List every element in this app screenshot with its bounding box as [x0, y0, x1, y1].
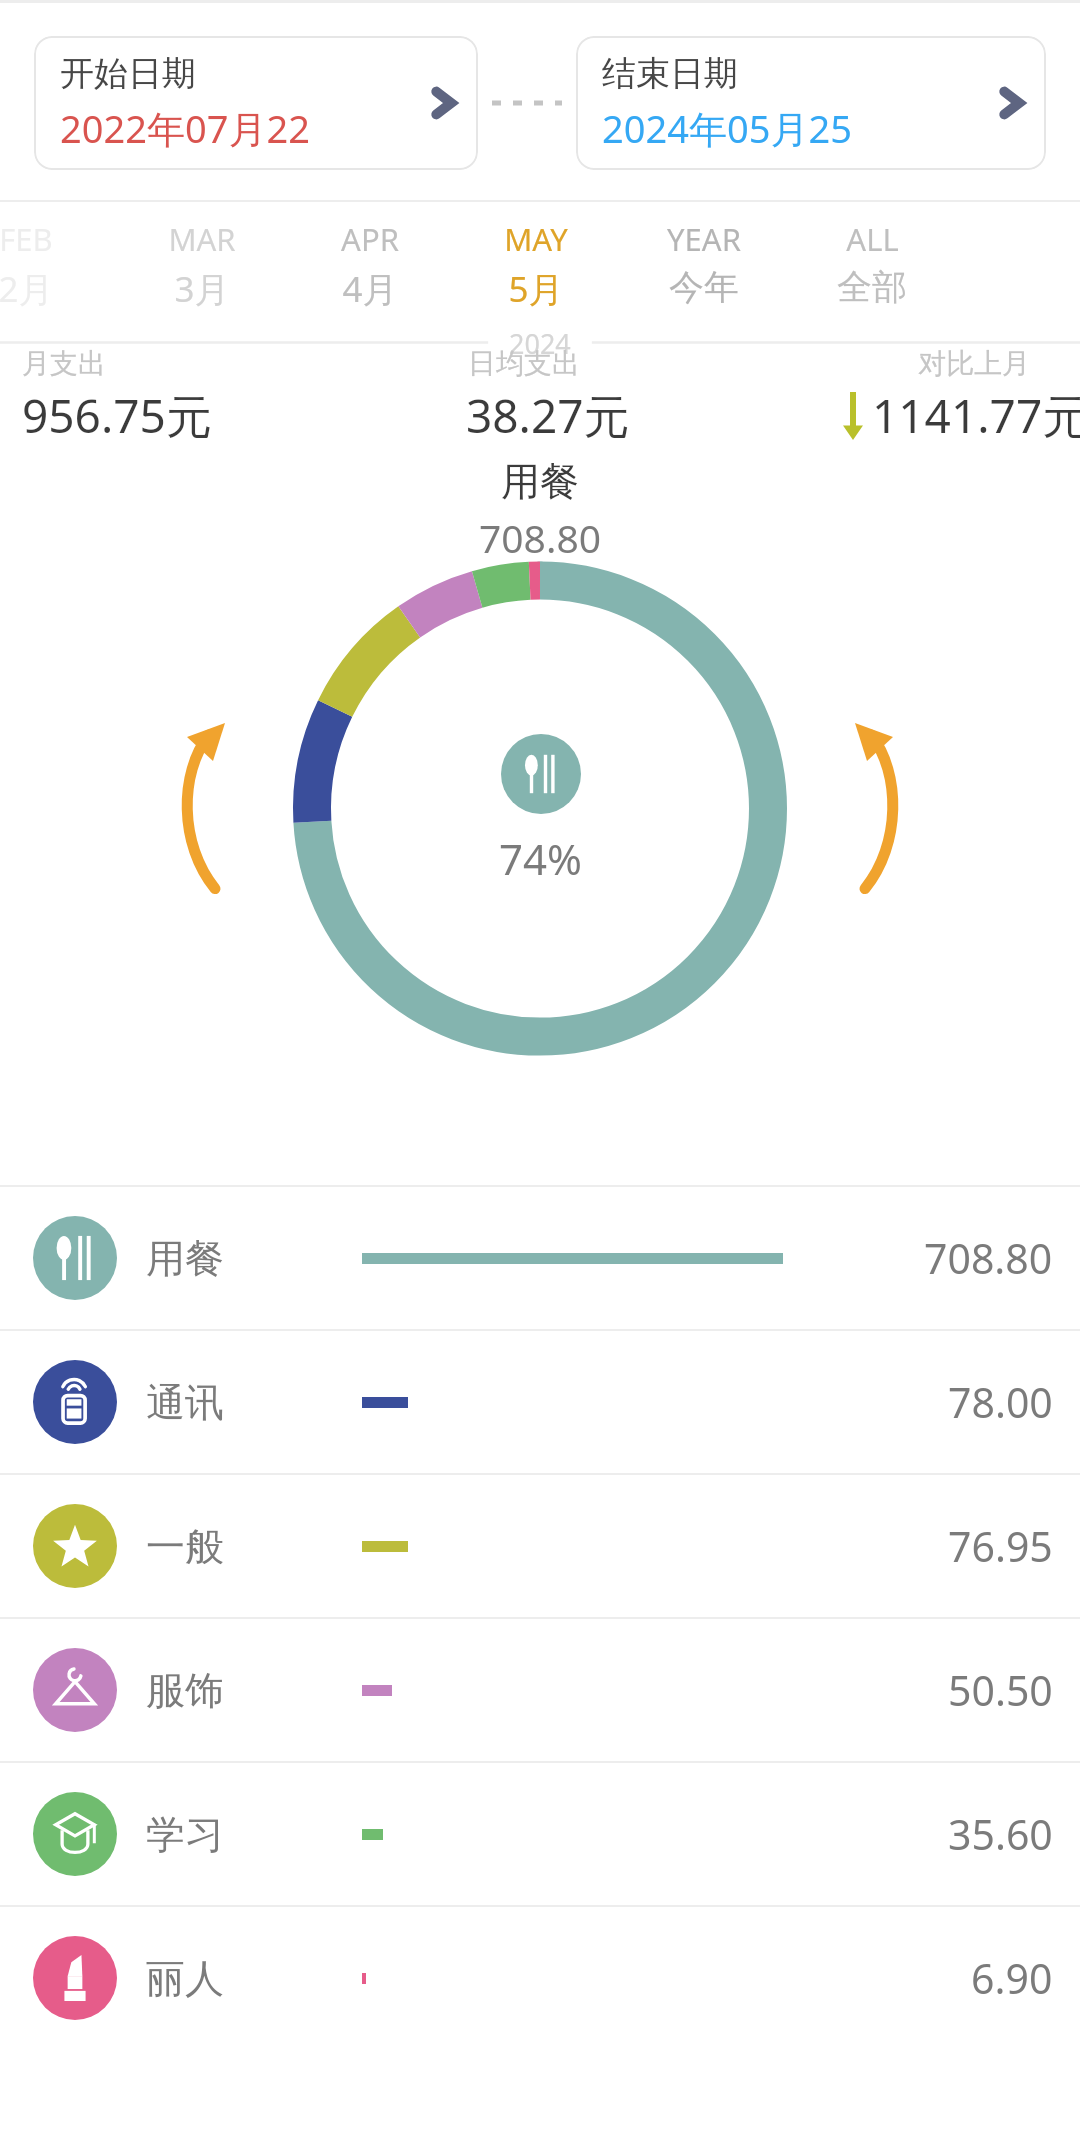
staticText: 76.95: [948, 1518, 1053, 1574]
staticText: 用餐: [501, 457, 579, 506]
button[interactable]: 丽人: [0, 1907, 1080, 2049]
button[interactable]: ALL: [792, 218, 952, 309]
button[interactable]: 结束日期: [576, 36, 1046, 170]
staticText: FEB: [0, 218, 53, 260]
staticText: 2月: [0, 265, 54, 313]
other: Choose date: [432, 84, 456, 122]
staticText: MAY: [504, 218, 568, 260]
staticText: 2024年05月25: [602, 102, 852, 154]
staticText: ALL: [846, 218, 899, 260]
staticText: 3月: [174, 265, 230, 313]
staticText: 74%: [499, 830, 582, 887]
button[interactable]: FEB: [0, 218, 106, 313]
staticText: 50.50: [948, 1662, 1053, 1718]
button[interactable]: 开始日期: [34, 36, 478, 170]
staticText: 对比上月: [918, 346, 1030, 381]
staticText: 2022年07月22: [60, 102, 310, 154]
button[interactable]: 一般: [0, 1475, 1080, 1617]
button[interactable]: 学习: [0, 1763, 1080, 1905]
staticText: 开始日期: [60, 52, 196, 95]
staticText: 一般: [146, 1522, 224, 1571]
staticText: APR: [341, 218, 399, 260]
staticText: YEAR: [667, 218, 741, 260]
button[interactable]: 通讯: [0, 1331, 1080, 1473]
staticText: 学习: [146, 1810, 224, 1859]
staticText: 956.75元: [22, 384, 212, 447]
staticText: 结束日期: [602, 52, 738, 95]
staticText: 35.60: [948, 1806, 1053, 1862]
staticText: 5月: [508, 265, 564, 313]
staticText: 78.00: [948, 1374, 1053, 1430]
button[interactable]: MAY: [456, 218, 616, 313]
staticText: 丽人: [146, 1954, 224, 2003]
staticText: 通讯: [146, 1378, 224, 1427]
button[interactable]: YEAR: [624, 218, 784, 309]
staticText: 服饰: [146, 1666, 224, 1715]
staticText: MAR: [168, 218, 236, 260]
staticText: 用餐: [146, 1234, 224, 1283]
staticText: 日均支出: [468, 346, 580, 381]
other: Choose date: [1000, 84, 1024, 122]
staticText: 1141.77元: [872, 384, 1080, 447]
staticText: 6.90: [971, 1950, 1053, 2006]
button[interactable]: 用餐: [0, 1187, 1080, 1329]
staticText: 全部: [837, 265, 907, 309]
staticText: 708.80: [924, 1230, 1053, 1286]
staticText: 今年: [669, 265, 739, 309]
staticText: 月支出: [22, 346, 106, 381]
staticText: 4月: [342, 265, 398, 313]
staticText: 2024: [509, 325, 571, 355]
button[interactable]: MAR: [122, 218, 282, 313]
staticText: 38.27元: [466, 384, 630, 447]
button[interactable]: 服饰: [0, 1619, 1080, 1761]
button[interactable]: APR: [290, 218, 450, 313]
staticText: 708.80: [479, 511, 601, 564]
